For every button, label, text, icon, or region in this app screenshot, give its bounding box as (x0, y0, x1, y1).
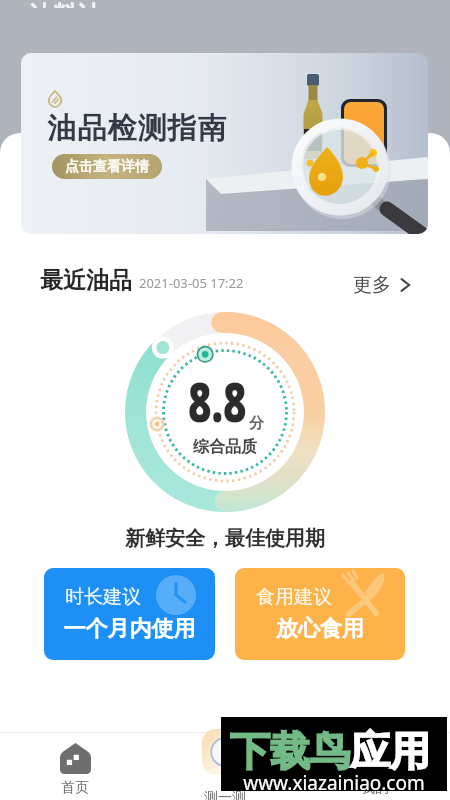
staticText: 首页 (61, 779, 89, 797)
staticText: 我的 (361, 779, 389, 797)
staticText: 时长建议 (65, 585, 141, 609)
button[interactable]: 时长建议 (44, 568, 215, 660)
staticText: 新鲜安全，最佳使用期 (23, 526, 427, 551)
button[interactable]: 我的 (300, 733, 450, 797)
staticText: 2021-03-05 17:22 (139, 274, 244, 292)
staticText: 一个月内使用 (44, 615, 215, 643)
staticText: 分 (249, 414, 264, 433)
staticText: 应用 (350, 726, 430, 776)
button[interactable]: 首页 (0, 733, 150, 797)
other: 首页 (60, 743, 91, 774)
staticText: 8.8 (188, 363, 247, 438)
button[interactable]: 食用建议 (235, 568, 405, 660)
button[interactable]: 更多 (350, 270, 415, 300)
button[interactable]: 点击查看详情 (65, 154, 149, 179)
staticText: 放心食用 (235, 615, 405, 643)
staticText: 测一测 (204, 789, 246, 800)
staticText: 油品检测指南 (47, 110, 227, 147)
staticText: 油料计 (29, 0, 101, 8)
staticText: www.xiazainiao.com (221, 770, 447, 796)
button[interactable]: 油品检测指南 (21, 53, 428, 234)
staticText: 下载鸟 (230, 726, 350, 776)
staticText: 更多 (353, 273, 391, 297)
other: 我的 (360, 743, 391, 774)
button[interactable]: 测一测 (150, 733, 300, 800)
staticText: 点击查看详情 (65, 158, 149, 176)
staticText: 综合品质 (193, 437, 257, 457)
staticText: 最近油品 (40, 266, 132, 295)
staticText: 食用建议 (256, 585, 332, 609)
other: 测一测 (202, 729, 248, 775)
